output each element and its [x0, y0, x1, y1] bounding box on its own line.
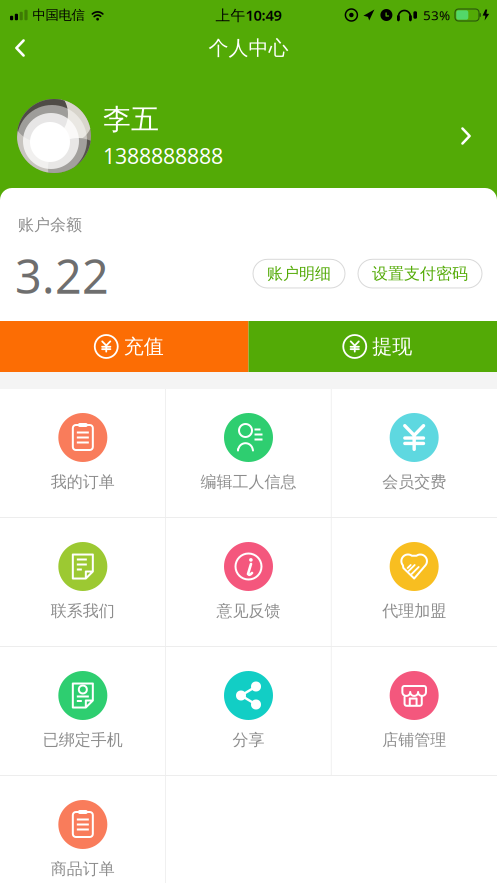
- staticText: 编辑工人信息: [200, 472, 296, 492]
- staticText: 账户余额: [18, 215, 82, 235]
- staticText: 个人中心: [208, 36, 288, 60]
- staticText: 我的订单: [51, 472, 115, 492]
- staticText: 已绑定手机: [43, 730, 123, 750]
- staticText: 充值: [124, 334, 164, 359]
- button[interactable]: 店铺管理: [332, 647, 496, 775]
- button[interactable]: 账户明细: [253, 259, 345, 288]
- button[interactable]: 李五: [0, 66, 497, 188]
- button[interactable]: 商品订单: [0, 776, 165, 883]
- button[interactable]: 提现: [248, 321, 497, 372]
- staticText: 分享: [232, 730, 264, 750]
- staticText: 3.22: [15, 245, 109, 307]
- staticText: 设置支付密码: [372, 264, 468, 283]
- button[interactable]: 会员交费: [332, 389, 496, 517]
- staticText: 上午10:49: [215, 5, 281, 25]
- staticText: 会员交费: [382, 472, 446, 492]
- button[interactable]: 我的订单: [0, 389, 165, 517]
- staticText: 账户明细: [267, 264, 331, 283]
- staticText: 店铺管理: [382, 730, 446, 750]
- button[interactable]: 编辑工人信息: [166, 389, 331, 517]
- button[interactable]: 设置支付密码: [358, 259, 482, 288]
- staticText: 商品订单: [51, 859, 115, 879]
- button[interactable]: Back: [0, 30, 30, 65]
- staticText: 提现: [372, 334, 412, 359]
- staticText: 意见反馈: [216, 601, 280, 621]
- staticText: 联系我们: [51, 601, 115, 621]
- button[interactable]: 充值: [0, 321, 248, 372]
- staticText: 代理加盟: [382, 601, 446, 621]
- staticText: 李五: [103, 102, 159, 136]
- button[interactable]: 代理加盟: [332, 518, 496, 646]
- staticText: 1388888888: [103, 141, 223, 170]
- button[interactable]: 分享: [166, 647, 331, 775]
- staticText: 中国电信: [33, 7, 85, 23]
- staticText: 53%: [423, 6, 450, 24]
- button[interactable]: 意见反馈: [166, 518, 331, 646]
- button[interactable]: 已绑定手机: [0, 647, 165, 775]
- button[interactable]: 联系我们: [0, 518, 165, 646]
